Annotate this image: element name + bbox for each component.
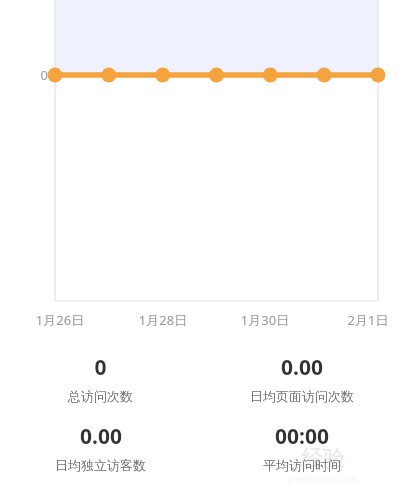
staticText: 0 — [28, 66, 48, 84]
staticText: 总访问次数 — [68, 388, 133, 404]
staticText: 日均页面访问次数 — [250, 388, 354, 404]
staticText: 00:00 — [275, 422, 329, 451]
staticText: 0.00 — [80, 422, 122, 451]
button[interactable]: 0 — [68, 353, 133, 404]
staticText: 平均访问时间 — [263, 457, 341, 473]
staticText: jingyan.baidu.com — [288, 473, 358, 484]
staticText: 0.00 — [281, 353, 323, 382]
staticText: 1月28日 — [123, 311, 203, 329]
button[interactable]: Visits trend chart — [0, 0, 403, 500]
staticText: 1月30日 — [225, 311, 305, 329]
staticText: 日均独立访客数 — [55, 457, 146, 473]
staticText: 经验 — [301, 445, 345, 473]
button[interactable]: 0.00 — [55, 422, 146, 473]
button[interactable]: 00:00 — [263, 422, 341, 473]
staticText: 0 — [94, 353, 107, 382]
staticText: 1月26日 — [20, 311, 100, 329]
staticText: 2月1日 — [328, 311, 403, 329]
button[interactable]: 0.00 — [250, 353, 354, 404]
